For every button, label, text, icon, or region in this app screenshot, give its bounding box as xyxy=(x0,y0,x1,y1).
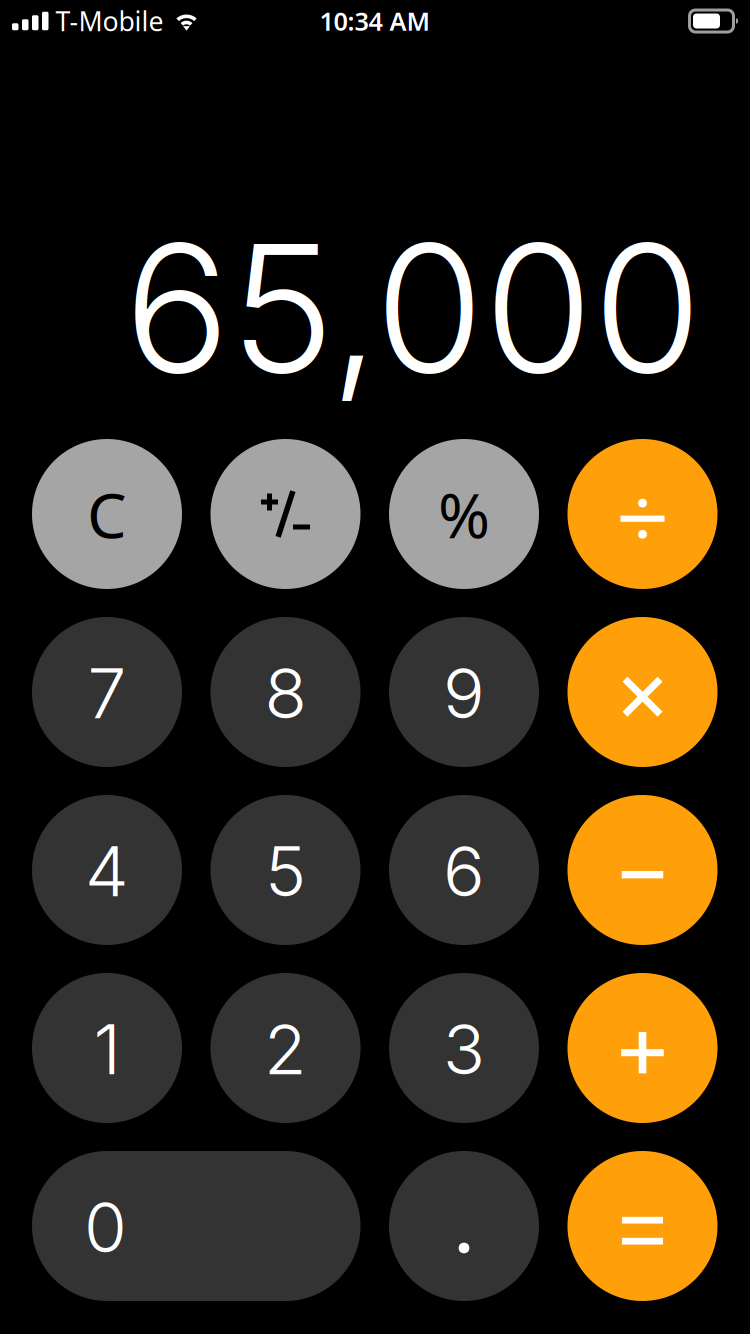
staticText: 3 xyxy=(443,1007,485,1091)
button[interactable]: 0 xyxy=(32,1151,360,1301)
button[interactable]: Plus Minus xyxy=(210,439,360,589)
button[interactable]: Multiply xyxy=(567,617,717,767)
button[interactable]: 3 xyxy=(389,973,539,1123)
staticText: 0 xyxy=(84,1185,127,1269)
button[interactable]: C xyxy=(32,439,182,589)
button[interactable]: 6 xyxy=(389,795,539,945)
staticText: 1 xyxy=(93,1007,120,1091)
button[interactable]: 5 xyxy=(210,795,360,945)
staticText: 6 xyxy=(443,829,485,913)
staticText: 10:34 AM xyxy=(319,4,430,38)
staticText: 7 xyxy=(87,651,126,735)
staticText: 2 xyxy=(264,1007,307,1091)
staticText: T-Mobile xyxy=(55,3,163,39)
button[interactable]: 8 xyxy=(210,617,360,767)
staticText: 65,000 xyxy=(124,201,702,414)
button[interactable]: Equals xyxy=(567,1151,717,1301)
button[interactable]: Divide xyxy=(567,439,717,589)
button[interactable]: Minus xyxy=(567,795,717,945)
button[interactable]: . xyxy=(389,1151,539,1301)
staticText: % xyxy=(438,472,490,556)
staticText: 4 xyxy=(85,829,129,913)
staticText: 5 xyxy=(265,829,306,913)
button[interactable]: % xyxy=(389,439,539,589)
staticText: 8 xyxy=(264,651,306,735)
button[interactable]: 9 xyxy=(389,617,539,767)
button[interactable]: 4 xyxy=(32,795,182,945)
button[interactable]: 2 xyxy=(210,973,360,1123)
button[interactable]: Plus xyxy=(567,973,717,1123)
staticText: 9 xyxy=(443,651,485,735)
staticText: C xyxy=(87,472,127,556)
button[interactable]: 1 xyxy=(32,973,182,1123)
button[interactable]: 7 xyxy=(32,617,182,767)
